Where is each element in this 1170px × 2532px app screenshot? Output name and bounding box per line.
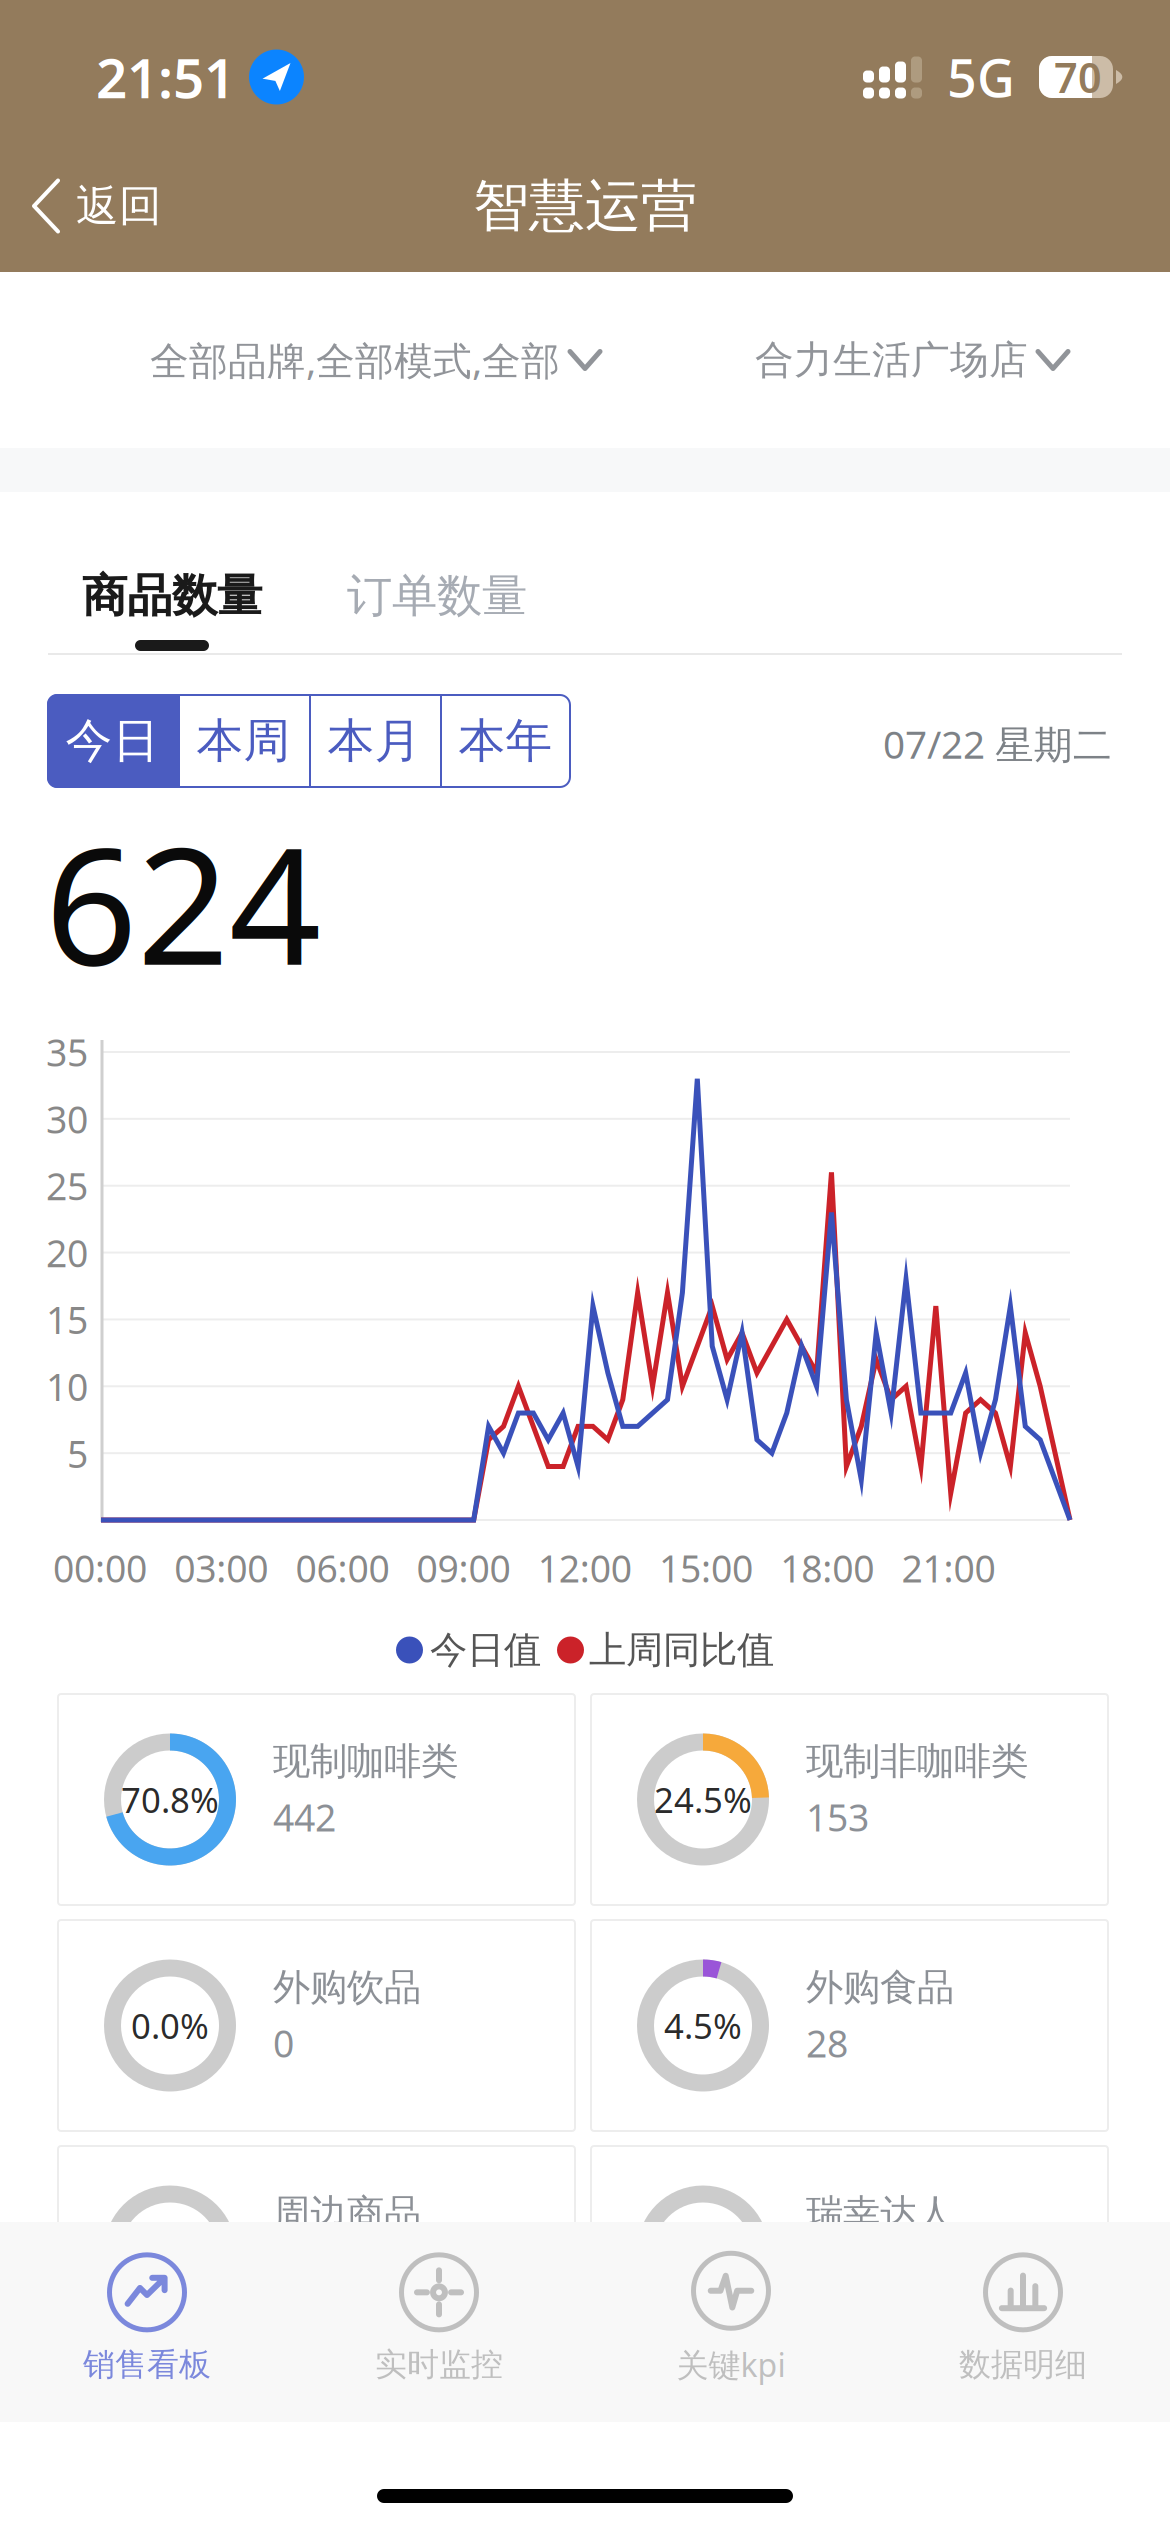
button[interactable]: 商品数量 — [48, 548, 296, 644]
button[interactable]: 本周 — [178, 694, 309, 788]
staticText: 瑞幸达人 — [806, 2190, 954, 2236]
staticText: 外购饮品 — [273, 1964, 421, 2010]
staticText: 153 — [806, 1792, 869, 1842]
staticText: 07/22 星期二 — [883, 718, 1112, 769]
staticText: 4.5% — [664, 2002, 742, 2048]
staticText: 本周 — [196, 712, 290, 770]
staticText: 销售看板 — [83, 2345, 211, 2384]
staticText: 00:00 — [53, 1543, 147, 1593]
staticText: 商品数量 — [82, 568, 262, 624]
staticText: 现制非咖啡类 — [806, 1738, 1028, 1784]
staticText: 20 — [46, 1228, 88, 1277]
staticText: 关键kpi — [676, 2343, 785, 2386]
button[interactable]: 0.0% — [58, 1920, 575, 2131]
staticText: 442 — [273, 1792, 336, 1842]
staticText: 0.0% — [131, 2228, 209, 2274]
staticText: 21:51 — [96, 41, 235, 113]
staticText: 全部品牌,全部模式,全部 — [150, 334, 560, 386]
staticText: 28 — [806, 2018, 848, 2068]
staticText: 今日 — [65, 712, 159, 770]
button[interactable]: 返回 — [0, 140, 186, 272]
button[interactable]: 全部品牌,全部模式,全部 — [120, 272, 630, 448]
button[interactable]: 4.5% — [591, 1920, 1108, 2131]
button[interactable]: 今日 — [47, 694, 178, 788]
staticText: 实时监控 — [375, 2345, 503, 2384]
staticText: 18:00 — [780, 1543, 874, 1593]
staticText: 30 — [46, 1094, 88, 1144]
staticText: 今日值 — [430, 1627, 541, 1673]
staticText: 周边商品 — [273, 2190, 421, 2236]
staticText: 合力生活广场店 — [755, 336, 1028, 384]
staticText: 本年 — [458, 712, 552, 770]
staticText: 24.5% — [654, 1776, 752, 1822]
button[interactable]: 本年 — [440, 694, 571, 788]
button[interactable]: 合力生活广场店 — [725, 272, 1098, 448]
staticText: 智慧运营 — [473, 172, 697, 240]
staticText: 0 — [273, 2018, 294, 2068]
button[interactable]: 70.8% — [58, 1694, 575, 1905]
staticText: 35 — [46, 1027, 88, 1077]
staticText: 15:00 — [659, 1543, 753, 1593]
button[interactable]: 订单数量 — [313, 548, 561, 644]
staticText: 5 — [67, 1429, 88, 1478]
staticText: 本月 — [327, 712, 421, 770]
staticText: 70.8% — [121, 1776, 219, 1822]
staticText: 624 — [45, 795, 321, 1009]
staticText: 5G — [947, 42, 1015, 112]
staticText: 25 — [46, 1161, 88, 1211]
staticText: 现制咖啡类 — [273, 1738, 458, 1784]
staticText: 21:00 — [901, 1543, 995, 1593]
button[interactable]: 销售看板 — [1, 2214, 293, 2430]
button[interactable]: 0.0% — [58, 2146, 575, 2357]
staticText: 09:00 — [417, 1543, 511, 1593]
staticText: 70 — [1054, 50, 1102, 104]
button[interactable]: 实时监控 — [293, 2214, 585, 2430]
button[interactable]: 24.5% — [591, 1694, 1108, 1905]
staticText: 12:00 — [538, 1543, 632, 1593]
staticText: 返回 — [76, 180, 162, 232]
staticText: 15 — [46, 1295, 88, 1344]
button[interactable]: 数据明细 — [877, 2214, 1169, 2430]
button[interactable]: 关键kpi — [585, 2214, 877, 2430]
staticText: 上周同比值 — [589, 1627, 774, 1673]
staticText: 订单数量 — [347, 568, 527, 624]
button[interactable]: 0.0% — [591, 2146, 1108, 2357]
staticText: 0.0% — [664, 2228, 742, 2274]
staticText: 0.0% — [131, 2002, 209, 2048]
staticText: 数据明细 — [959, 2345, 1087, 2384]
staticText: 外购食品 — [806, 1964, 954, 2010]
button[interactable]: 本月 — [309, 694, 440, 788]
staticText: 10 — [46, 1362, 88, 1411]
staticText: 03:00 — [174, 1543, 268, 1593]
staticText: 06:00 — [295, 1543, 389, 1593]
